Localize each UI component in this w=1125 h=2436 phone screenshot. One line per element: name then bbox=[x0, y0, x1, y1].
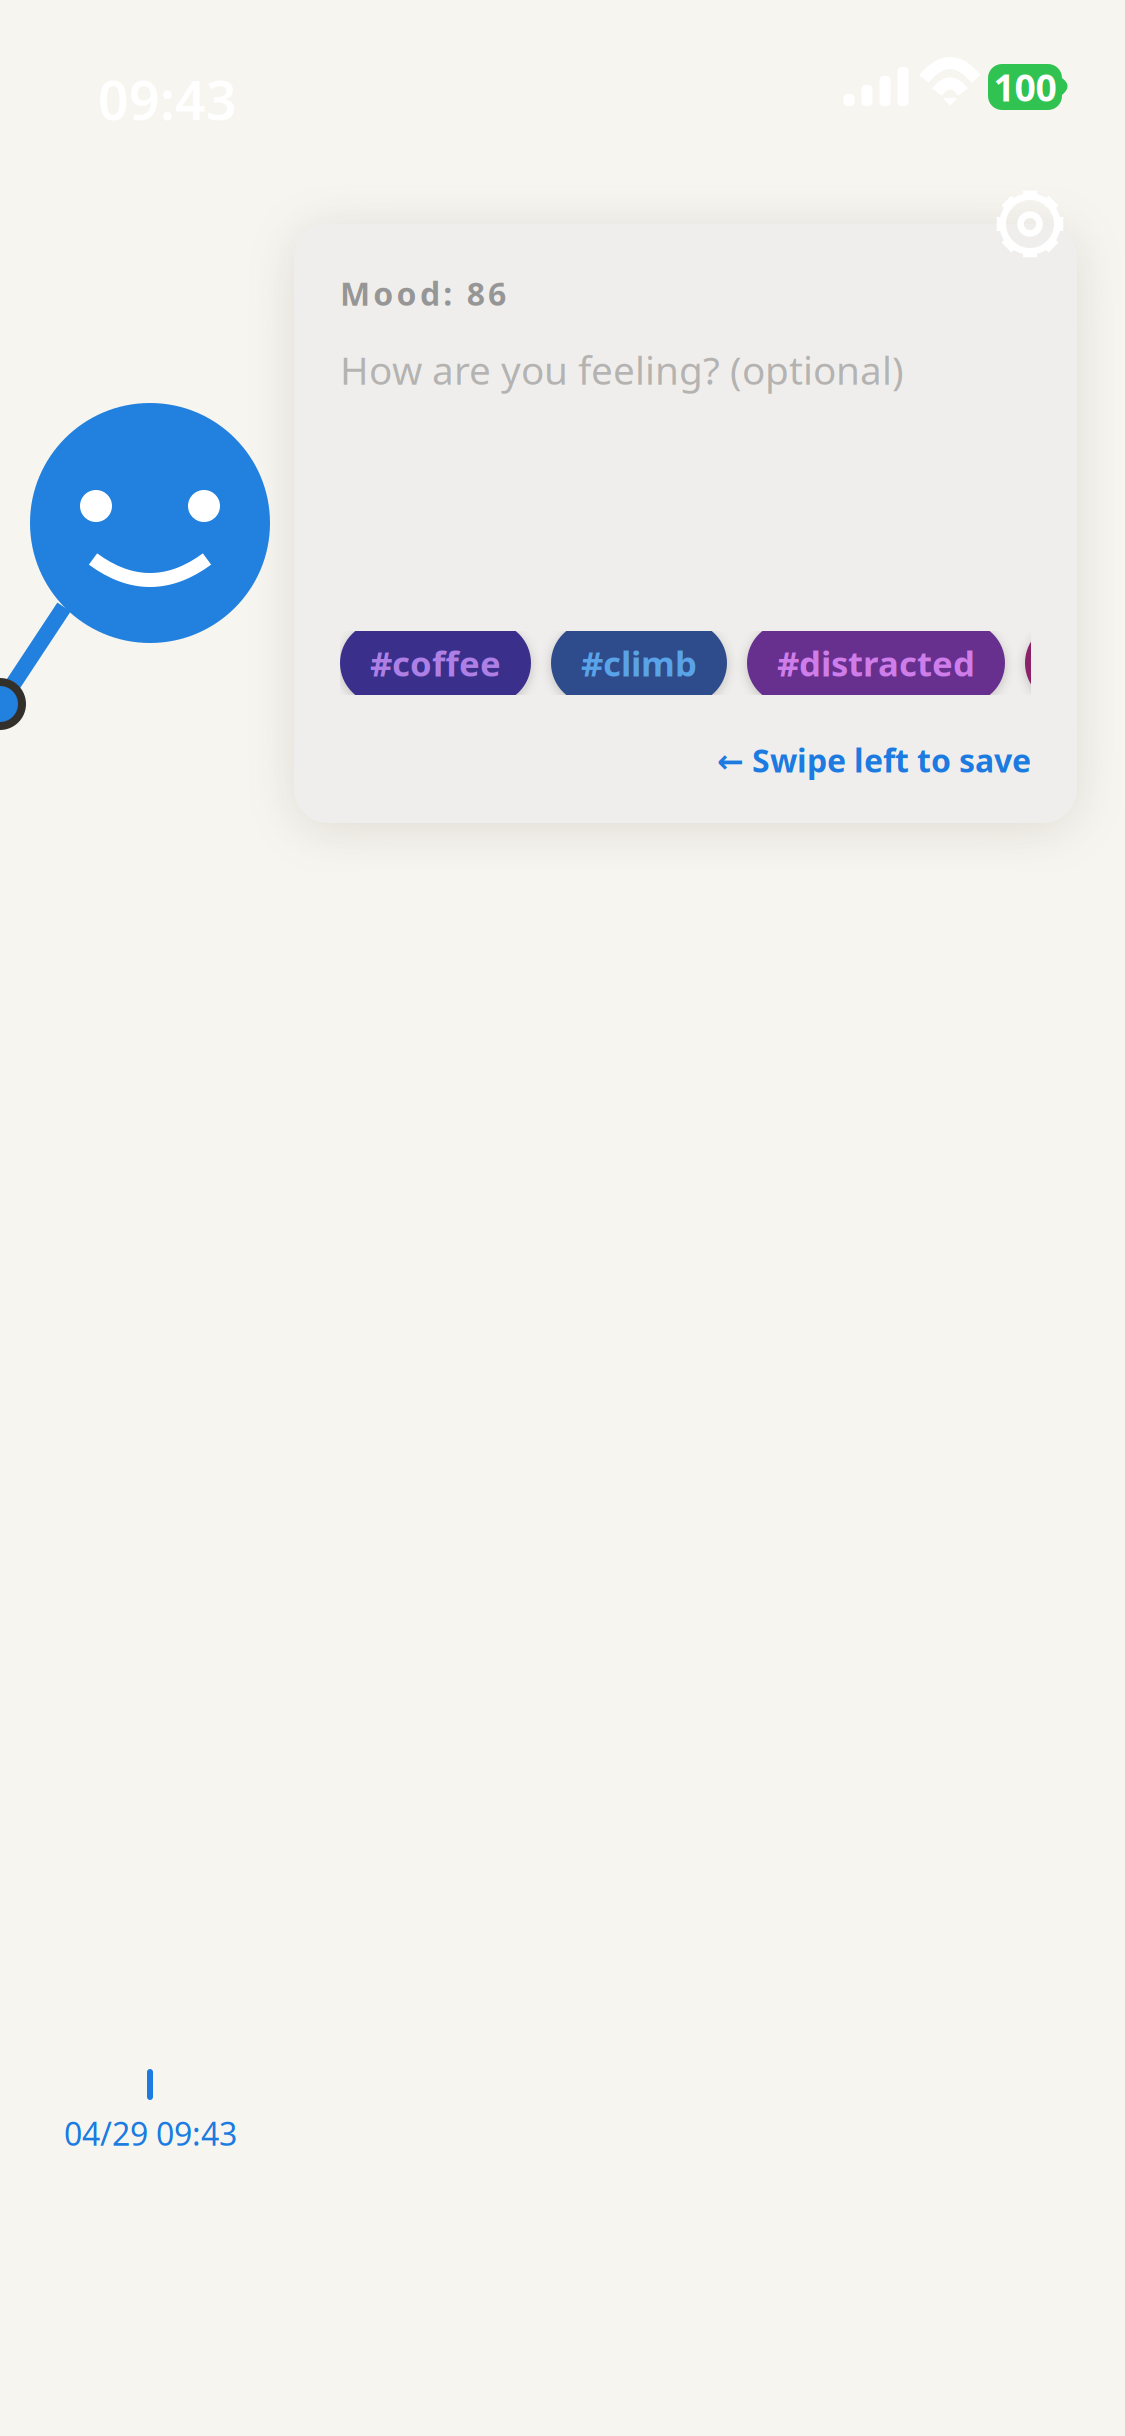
button[interactable]: Settings bbox=[982, 176, 1078, 272]
staticText: Mood: 86 bbox=[340, 272, 506, 314]
button[interactable]: #sleepy bbox=[1025, 622, 1125, 704]
button[interactable]: #climb bbox=[551, 622, 727, 704]
staticText: #coffee bbox=[370, 640, 501, 686]
button[interactable]: #distracted bbox=[747, 622, 1005, 704]
staticText: #distracted bbox=[777, 640, 975, 686]
staticText: How are you feeling? (optional) bbox=[340, 344, 904, 395]
staticText: 04/29 09:43 bbox=[64, 2112, 237, 2154]
button[interactable]: ← Swipe left to save bbox=[340, 736, 1031, 784]
staticText: #sleepy bbox=[1055, 640, 1125, 686]
button[interactable]: #coffee bbox=[340, 622, 531, 704]
staticText: 09:43 bbox=[98, 64, 237, 135]
staticText: 100 bbox=[993, 62, 1056, 112]
staticText: #climb bbox=[581, 640, 697, 686]
staticText: ← Swipe left to save bbox=[717, 739, 1031, 781]
